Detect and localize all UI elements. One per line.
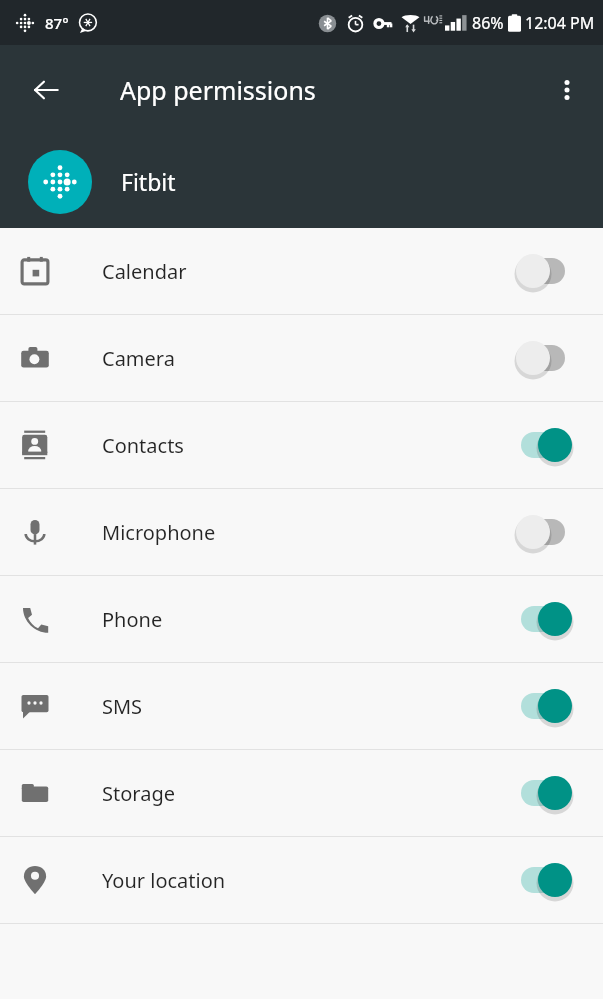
staticText: Phone: [102, 606, 515, 633]
button[interactable]: Contacts: [0, 402, 603, 488]
button[interactable]: More options: [543, 66, 591, 114]
staticText: Fitbit: [121, 166, 176, 197]
staticText: Microphone: [102, 519, 515, 546]
staticText: Storage: [102, 780, 515, 807]
staticText: Your location: [102, 867, 515, 894]
button[interactable]: SMS: [0, 663, 603, 749]
button[interactable]: Phone: [0, 576, 603, 662]
button[interactable]: Navigate up: [22, 66, 70, 114]
staticText: Contacts: [102, 432, 515, 459]
staticText: Calendar: [102, 258, 515, 285]
staticText: SMS: [102, 693, 515, 720]
staticText: 86%: [472, 12, 504, 34]
button[interactable]: Your location: [0, 837, 603, 923]
button[interactable]: Camera: [0, 315, 603, 401]
button[interactable]: Microphone: [0, 489, 603, 575]
staticText: App permissions: [120, 73, 316, 107]
button[interactable]: Calendar: [0, 228, 603, 314]
staticText: 12:04 PM: [525, 12, 595, 34]
staticText: Camera: [102, 345, 515, 372]
button[interactable]: Storage: [0, 750, 603, 836]
staticText: 87°: [45, 13, 69, 33]
button[interactable]: Fitbit: [0, 135, 603, 228]
